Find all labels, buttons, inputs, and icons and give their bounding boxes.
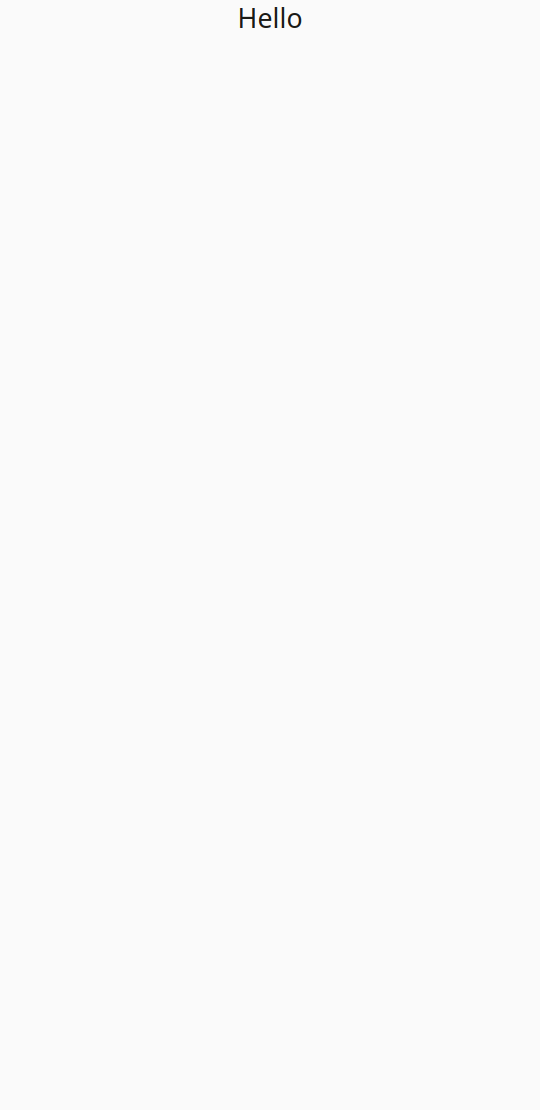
staticText: Hello [237, 0, 302, 35]
